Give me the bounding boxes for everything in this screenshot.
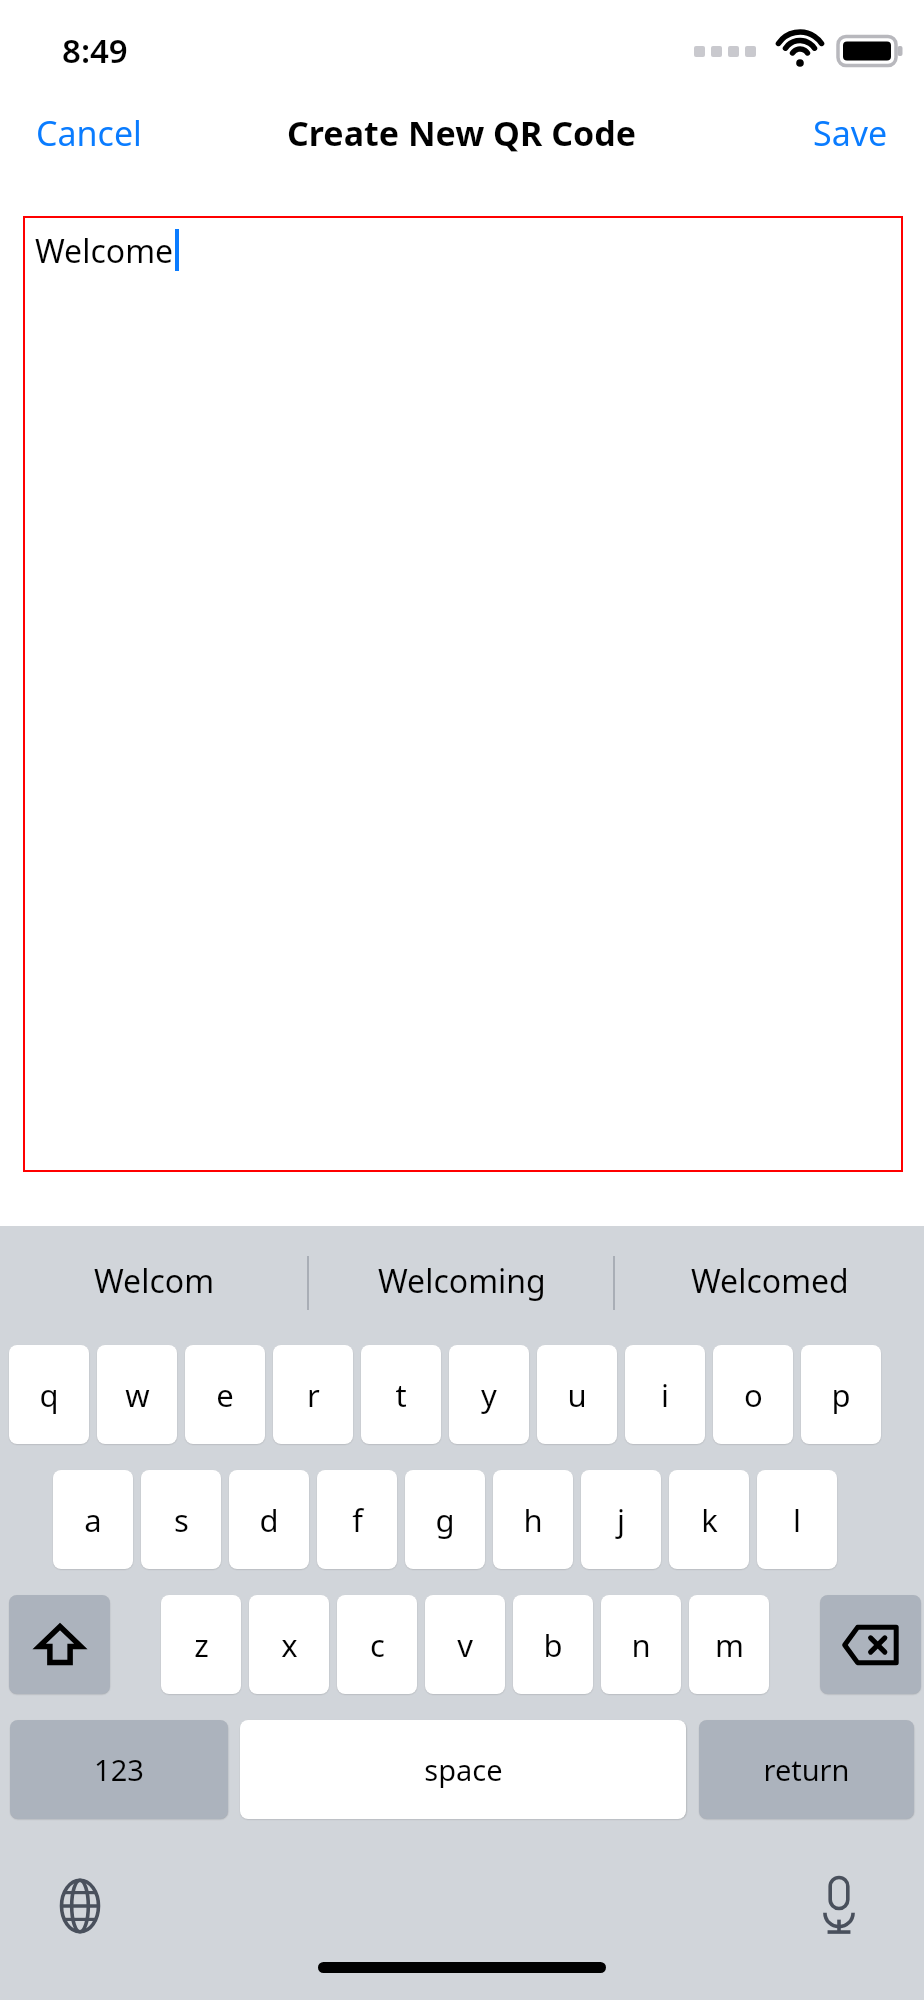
- staticText: u: [567, 1374, 587, 1416]
- button[interactable]: space: [240, 1720, 686, 1819]
- button[interactable]: p: [801, 1345, 881, 1444]
- staticText: f: [352, 1499, 363, 1541]
- button[interactable]: h: [493, 1470, 573, 1569]
- button[interactable]: m: [689, 1595, 769, 1694]
- staticText: return: [763, 1750, 850, 1789]
- staticText: g: [435, 1499, 455, 1541]
- staticText: o: [744, 1374, 763, 1416]
- button[interactable]: w: [97, 1345, 177, 1444]
- staticText: Create New QR Code: [287, 110, 637, 156]
- button[interactable]: o: [713, 1345, 793, 1444]
- staticText: Welcome: [35, 229, 174, 273]
- staticText: l: [793, 1499, 801, 1541]
- button[interactable]: 123: [10, 1720, 228, 1819]
- staticText: e: [216, 1374, 234, 1416]
- staticText: i: [661, 1374, 669, 1416]
- button[interactable]: Shift: [9, 1595, 110, 1694]
- staticText: n: [631, 1624, 651, 1666]
- staticText: h: [523, 1499, 543, 1541]
- button[interactable]: e: [185, 1345, 265, 1444]
- button[interactable]: b: [513, 1595, 593, 1694]
- button[interactable]: r: [273, 1345, 353, 1444]
- staticText: b: [543, 1624, 563, 1666]
- button[interactable]: return: [699, 1720, 914, 1819]
- staticText: p: [831, 1374, 851, 1416]
- button[interactable]: z: [161, 1595, 241, 1694]
- button[interactable]: Welcomed: [616, 1226, 924, 1336]
- button[interactable]: Cancel: [0, 100, 156, 166]
- staticText: t: [395, 1374, 407, 1416]
- button[interactable]: l: [757, 1470, 837, 1569]
- staticText: space: [424, 1750, 503, 1789]
- button[interactable]: Welcoming: [308, 1226, 616, 1336]
- button[interactable]: c: [337, 1595, 417, 1694]
- staticText: w: [125, 1374, 150, 1416]
- button[interactable]: t: [361, 1345, 441, 1444]
- staticText: a: [84, 1499, 102, 1541]
- staticText: v: [457, 1624, 473, 1666]
- staticText: k: [701, 1499, 718, 1541]
- button[interactable]: Change keyboard language: [45, 1871, 115, 1941]
- staticText: c: [370, 1624, 385, 1666]
- staticText: y: [481, 1374, 497, 1416]
- button[interactable]: k: [669, 1470, 749, 1569]
- staticText: Welcoming: [378, 1259, 546, 1303]
- button[interactable]: Welcome: [23, 216, 903, 1172]
- button[interactable]: i: [625, 1345, 705, 1444]
- staticText: m: [715, 1624, 744, 1666]
- button[interactable]: x: [249, 1595, 329, 1694]
- button[interactable]: Dictate: [804, 1871, 874, 1941]
- staticText: q: [39, 1374, 59, 1416]
- staticText: Welcomed: [691, 1259, 849, 1303]
- button[interactable]: f: [317, 1470, 397, 1569]
- button[interactable]: Backspace: [820, 1595, 921, 1694]
- staticText: Save: [813, 110, 888, 156]
- button[interactable]: n: [601, 1595, 681, 1694]
- button[interactable]: v: [425, 1595, 505, 1694]
- button[interactable]: s: [141, 1470, 221, 1569]
- staticText: Welcom: [94, 1259, 215, 1303]
- button[interactable]: Welcom: [0, 1226, 308, 1336]
- button[interactable]: d: [229, 1470, 309, 1569]
- staticText: x: [281, 1624, 298, 1666]
- button[interactable]: g: [405, 1470, 485, 1569]
- staticText: j: [617, 1499, 625, 1541]
- button[interactable]: j: [581, 1470, 661, 1569]
- staticText: s: [174, 1499, 189, 1541]
- button[interactable]: u: [537, 1345, 617, 1444]
- button[interactable]: q: [9, 1345, 89, 1444]
- staticText: 123: [94, 1750, 144, 1789]
- staticText: Cancel: [36, 110, 142, 156]
- button[interactable]: y: [449, 1345, 529, 1444]
- staticText: z: [194, 1624, 209, 1666]
- button[interactable]: Save: [799, 100, 924, 166]
- button[interactable]: a: [53, 1470, 133, 1569]
- staticText: d: [259, 1499, 279, 1541]
- staticText: 8:49: [62, 28, 128, 73]
- staticText: r: [307, 1374, 320, 1416]
